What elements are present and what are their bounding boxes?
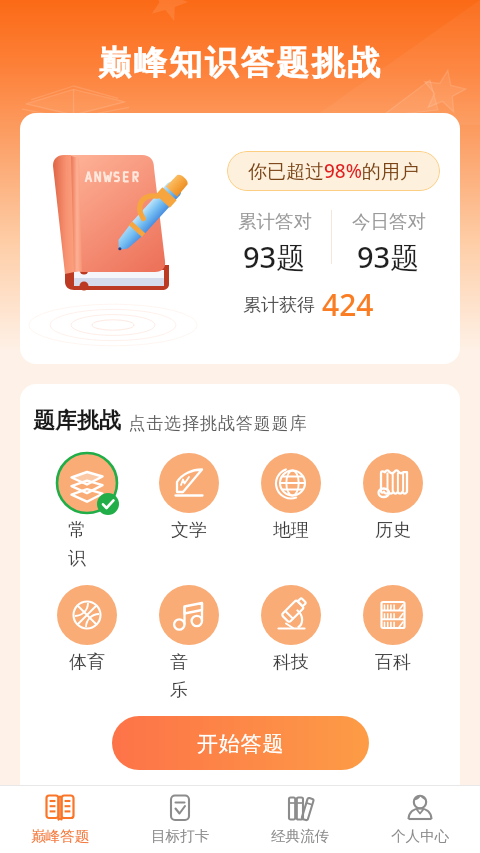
staticText: 目标打卡 — [151, 827, 210, 845]
staticText: 经典流传 — [271, 827, 330, 845]
button[interactable]: 音 — [138, 579, 240, 702]
button[interactable]: 地理 — [240, 447, 342, 542]
staticText: 百科 — [375, 651, 411, 674]
staticText: 乐 — [170, 679, 188, 702]
staticText: 巅峰知识答题挑战 — [98, 42, 383, 84]
staticText: 题库挑战 — [33, 407, 121, 435]
staticText: 今日答对 — [352, 210, 426, 233]
staticText: 历史 — [375, 519, 411, 542]
staticText: 体育 — [69, 651, 105, 674]
staticText: 累计答对 — [238, 210, 312, 233]
staticText: 424 — [322, 284, 374, 325]
button[interactable]: 目标打卡 — [120, 785, 240, 853]
button[interactable]: 常 — [36, 447, 138, 570]
staticText: 常 — [68, 519, 86, 542]
button[interactable]: 历史 — [342, 447, 444, 542]
button[interactable]: 开始答题 — [112, 716, 369, 770]
button[interactable]: 百科 — [342, 579, 444, 674]
staticText: 你已超过98%的用户 — [248, 158, 419, 184]
staticText: 93题 — [243, 237, 306, 277]
staticText: 累计获得 — [243, 294, 315, 317]
staticText: 文学 — [171, 519, 207, 542]
staticText: 音 — [170, 651, 188, 674]
staticText: 93题 — [357, 237, 420, 277]
staticText: 个人中心 — [391, 827, 450, 845]
staticText: 点击选择挑战答题题库 — [128, 413, 307, 434]
button[interactable]: 经典流传 — [240, 785, 360, 853]
staticText: 科技 — [273, 651, 309, 674]
button[interactable]: 文学 — [138, 447, 240, 542]
staticText: 识 — [68, 547, 86, 570]
button[interactable]: 个人中心 — [360, 785, 480, 853]
staticText: 巅峰答题 — [31, 827, 90, 845]
button[interactable]: 巅峰答题 — [0, 785, 120, 853]
button[interactable]: 科技 — [240, 579, 342, 674]
button[interactable]: 体育 — [36, 579, 138, 674]
staticText: 地理 — [273, 519, 309, 542]
staticText: 开始答题 — [197, 731, 285, 757]
